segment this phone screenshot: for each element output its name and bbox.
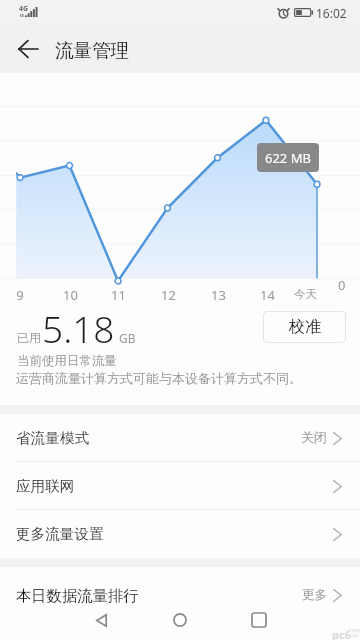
staticText: pc6 bbox=[332, 627, 351, 640]
staticText: 本日数据流量排行 bbox=[16, 586, 139, 605]
staticText: 更多流量设置 bbox=[16, 525, 104, 543]
staticText: 省流量模式 bbox=[16, 429, 89, 447]
staticText: 11 bbox=[111, 286, 126, 304]
button[interactable]: Back bbox=[8, 29, 48, 69]
button[interactable]: Back bbox=[71, 604, 131, 640]
staticText: 应用联网 bbox=[16, 477, 75, 495]
staticText: 流量管理 bbox=[55, 39, 130, 62]
staticText: 已用 bbox=[17, 330, 41, 345]
staticText: 9 bbox=[16, 286, 24, 304]
button[interactable]: Home bbox=[150, 604, 210, 640]
staticText: 622 MB bbox=[265, 149, 311, 167]
staticText: 当前使用日常流量 bbox=[17, 353, 117, 369]
staticText: 关闭 bbox=[301, 430, 327, 446]
staticText: 10 bbox=[63, 286, 78, 304]
button[interactable]: 校准 bbox=[263, 311, 346, 343]
staticText: 运营商流量计算方式可能与本设备计算方式不同。 bbox=[16, 370, 302, 386]
staticText: 12 bbox=[161, 286, 176, 304]
staticText: 5.18 bbox=[42, 303, 115, 353]
staticText: 4G bbox=[19, 4, 29, 14]
button[interactable]: 应用联网 bbox=[0, 462, 360, 510]
staticText: 13 bbox=[211, 286, 226, 304]
button[interactable]: 更多流量设置 bbox=[0, 510, 360, 558]
staticText: 16:02 bbox=[316, 5, 347, 21]
staticText: 14 bbox=[260, 286, 275, 304]
staticText: 更多 bbox=[302, 587, 327, 603]
staticText: 今天 bbox=[294, 287, 317, 301]
staticText: GB bbox=[119, 330, 136, 346]
button[interactable]: 本日数据流量排行 bbox=[0, 567, 360, 623]
staticText: 下载站 .COM bbox=[348, 628, 360, 638]
button[interactable]: 省流量模式 bbox=[0, 414, 360, 462]
staticText: 校准 bbox=[289, 317, 321, 337]
button[interactable]: Recent apps bbox=[229, 604, 289, 640]
staticText: 0 bbox=[338, 276, 346, 294]
